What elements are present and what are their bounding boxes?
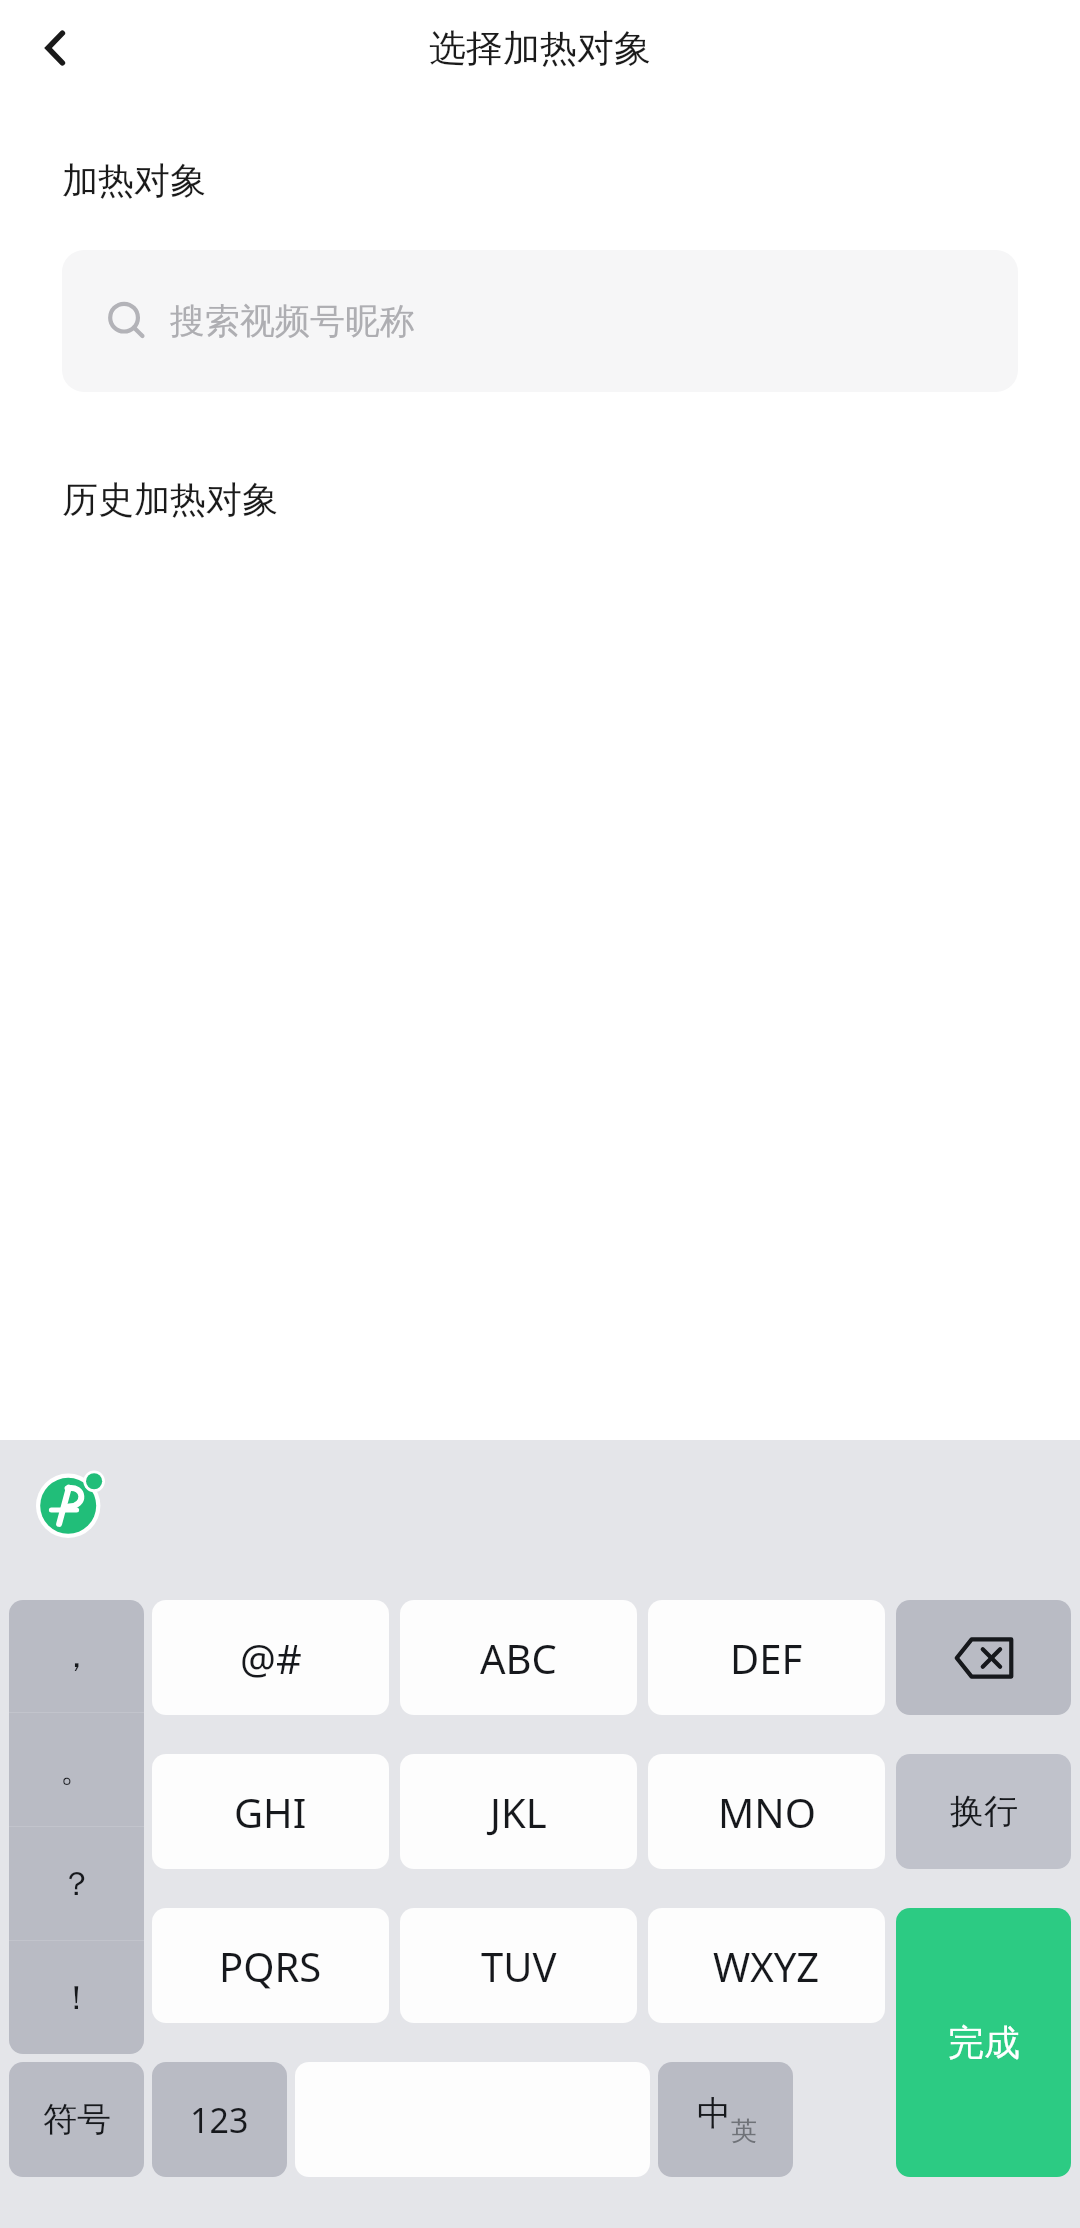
button[interactable]: ？ — [9, 1827, 144, 1940]
staticText: ？ — [60, 1863, 93, 1905]
button[interactable]: 搜索视频号昵称 — [62, 250, 1018, 392]
staticText: 加热对象 — [62, 158, 206, 203]
staticText: ABC — [480, 1631, 557, 1685]
button[interactable]: Input method logo — [36, 1468, 106, 1538]
button[interactable]: MNO — [648, 1754, 885, 1869]
button[interactable]: 。 — [9, 1713, 144, 1826]
staticText: 搜索视频号昵称 — [170, 299, 415, 343]
button[interactable]: 123 — [152, 2062, 287, 2177]
staticText: 。 — [60, 1749, 93, 1791]
button[interactable]: 换行 — [896, 1754, 1071, 1869]
button[interactable]: ABC — [400, 1600, 637, 1715]
staticText: JKL — [490, 1785, 547, 1839]
staticText: 符号 — [43, 2098, 111, 2141]
staticText: DEF — [730, 1631, 803, 1685]
staticText: ， — [60, 1635, 93, 1677]
button[interactable]: Backspace — [896, 1600, 1071, 1715]
button[interactable]: WXYZ — [648, 1908, 885, 2023]
staticText: 中 — [697, 2092, 731, 2135]
staticText: 历史加热对象 — [62, 477, 278, 522]
button[interactable]: Back — [18, 10, 94, 86]
staticText: PQRS — [219, 1939, 322, 1993]
staticText: MNO — [718, 1785, 816, 1839]
staticText: WXYZ — [713, 1939, 820, 1993]
button[interactable]: GHI — [152, 1754, 389, 1869]
button[interactable]: JKL — [400, 1754, 637, 1869]
staticText: @# — [240, 1631, 302, 1685]
button[interactable]: ！ — [9, 1941, 144, 2054]
staticText: 英 — [731, 2115, 757, 2148]
button[interactable]: ， — [9, 1600, 144, 1712]
button[interactable]: DEF — [648, 1600, 885, 1715]
button[interactable]: 完成 — [896, 1908, 1071, 2177]
staticText: 完成 — [948, 2020, 1020, 2065]
staticText: 选择加热对象 — [429, 25, 651, 72]
staticText: TUV — [481, 1939, 557, 1993]
button[interactable]: 符号 — [9, 2062, 144, 2177]
staticText: ！ — [60, 1977, 93, 2019]
button[interactable]: TUV — [400, 1908, 637, 2023]
button[interactable]: PQRS — [152, 1908, 389, 2023]
staticText: GHI — [234, 1785, 307, 1839]
staticText: 换行 — [950, 1790, 1018, 1833]
staticText: 123 — [190, 2097, 249, 2143]
button[interactable]: @# — [152, 1600, 389, 1715]
button[interactable]: Switch Chinese English — [658, 2062, 793, 2177]
